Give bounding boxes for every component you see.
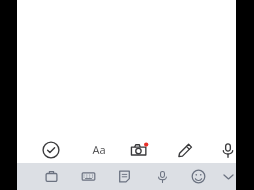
- button[interactable]: Keyboard: [76, 163, 100, 190]
- button[interactable]: Dictate: [150, 163, 174, 190]
- button[interactable]: Emoji: [186, 163, 210, 190]
- button[interactable]: Collapse: [216, 163, 240, 190]
- button[interactable]: Camera: [126, 136, 152, 163]
- staticText: Aa: [92, 142, 106, 157]
- button[interactable]: Notes: [112, 163, 136, 190]
- button[interactable]: Aa: [84, 136, 114, 163]
- button[interactable]: Draw: [172, 136, 198, 163]
- button[interactable]: Voice message: [215, 136, 241, 163]
- button[interactable]: Confirm: [38, 136, 64, 163]
- button[interactable]: Apps: [39, 163, 63, 190]
